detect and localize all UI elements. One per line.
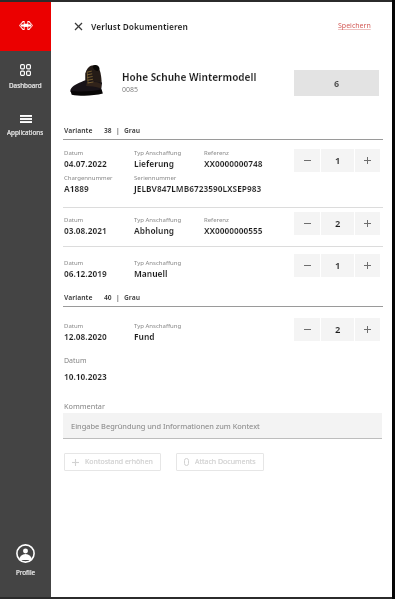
staticText: Hohe Schuhe Wintermodell	[122, 70, 257, 83]
staticText: 1	[335, 259, 341, 272]
staticText: Profile	[16, 568, 36, 577]
button[interactable]: Dashboard	[0, 64, 51, 90]
staticText: Attach Documents	[195, 457, 256, 467]
staticText: Variante	[64, 126, 93, 135]
staticText: JELBV847LMB6723590LXSEP983	[134, 183, 262, 194]
staticText: 1	[335, 154, 341, 167]
button[interactable]: Profile	[0, 544, 51, 577]
staticText: 10.10.2023	[64, 371, 107, 382]
staticText: 2	[335, 323, 341, 336]
staticText: |	[116, 126, 120, 135]
staticText: Datum	[64, 149, 84, 157]
staticText: Applications	[7, 128, 44, 137]
staticText: Referenz	[204, 216, 229, 224]
staticText: XX0000000555	[204, 225, 263, 236]
staticText: Abholung	[134, 225, 175, 236]
staticText: Speichern	[338, 21, 371, 31]
staticText: Typ Anschaffung	[134, 322, 182, 330]
button[interactable]: Decrease quantity	[294, 212, 320, 235]
button[interactable]: Kontostand erhöhen	[64, 453, 161, 471]
staticText: Datum	[64, 259, 84, 267]
staticText: Dashboard	[9, 81, 42, 90]
staticText: Fund	[134, 331, 155, 342]
staticText: Eingabe Begründung und Informationen zum…	[71, 421, 260, 431]
button[interactable]: Speichern	[330, 13, 379, 39]
staticText: 0085	[122, 85, 139, 95]
staticText: 04.07.2022	[64, 158, 107, 169]
staticText: Datum	[64, 216, 84, 224]
staticText: 40	[104, 293, 112, 302]
staticText: 03.08.2021	[64, 225, 107, 236]
staticText: Chargennummer	[64, 174, 113, 182]
button[interactable]: 6	[294, 70, 379, 96]
staticText: |	[116, 293, 120, 302]
button[interactable]: SBB home	[0, 0, 51, 51]
staticText: Typ Anschaffung	[134, 259, 182, 267]
staticText: 12.08.2020	[64, 331, 107, 342]
staticText: Lieferung	[134, 158, 174, 169]
staticText: 06.12.2019	[64, 268, 107, 279]
button[interactable]: Attach Documents	[176, 453, 264, 471]
button[interactable]: Eingabe Begründung und Informationen zum…	[63, 413, 382, 439]
staticText: Referenz	[204, 149, 229, 157]
staticText: XX0000000748	[204, 158, 263, 169]
staticText: Variante	[64, 293, 93, 302]
staticText: Seriennummer	[134, 174, 177, 182]
staticText: Typ Anschaffung	[134, 149, 182, 157]
button[interactable]: Increase quantity	[355, 318, 380, 341]
button[interactable]: Increase quantity	[355, 149, 380, 172]
staticText: A1889	[64, 183, 89, 194]
staticText: Datum	[64, 356, 87, 366]
staticText: Kontostand erhöhen	[85, 457, 153, 467]
button[interactable]: Increase quantity	[355, 254, 380, 277]
staticText: 6	[334, 77, 340, 89]
staticText: Verlust Dokumentieren	[91, 21, 188, 32]
button[interactable]: Close	[71, 19, 85, 33]
staticText: Datum	[64, 322, 84, 330]
button[interactable]: Decrease quantity	[294, 254, 320, 277]
staticText: Manuell	[134, 268, 168, 279]
staticText: Kommentar	[64, 401, 105, 411]
staticText: Grau	[124, 293, 141, 302]
button[interactable]: Decrease quantity	[294, 149, 320, 172]
staticText: 2	[335, 217, 341, 230]
staticText: 38	[104, 126, 112, 135]
staticText: Typ Anschaffung	[134, 216, 182, 224]
button[interactable]: Applications	[0, 115, 51, 137]
button[interactable]: Increase quantity	[355, 212, 380, 235]
staticText: Grau	[124, 126, 141, 135]
button[interactable]: Decrease quantity	[294, 318, 320, 341]
